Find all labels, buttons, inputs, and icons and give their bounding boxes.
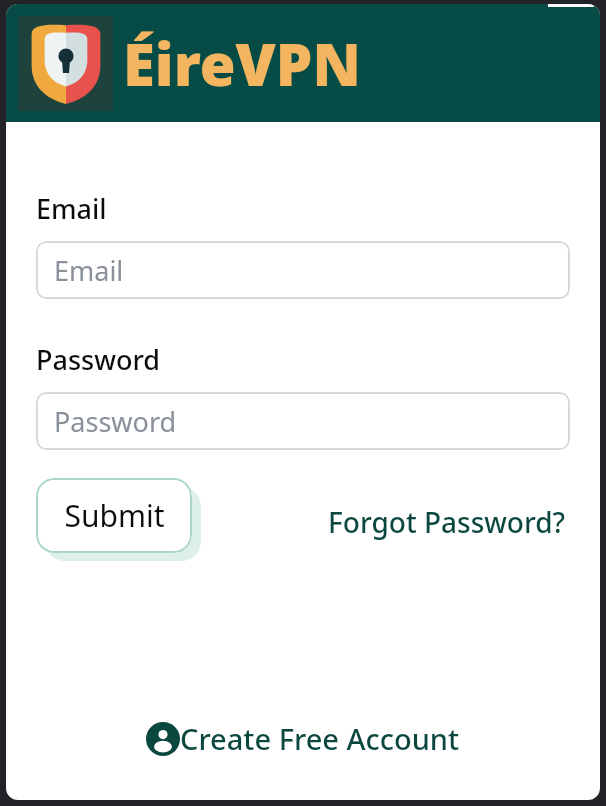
other: Create Free Account [146,722,180,756]
staticText: Email [36,190,107,227]
staticText: Email [54,252,124,289]
staticText: Create Free Account [180,719,460,758]
staticText: Submit [64,495,165,536]
button[interactable]: Submit [36,478,192,553]
button[interactable]: Email [36,241,570,299]
button[interactable]: Password [36,392,570,450]
staticText: ÉireVPN [123,24,361,103]
staticText: Password [36,341,161,378]
staticText: Password [54,403,177,440]
staticText: Forgot Password? [328,503,566,541]
button[interactable]: Create Free Account [140,713,466,764]
button[interactable]: Forgot Password? [324,497,570,547]
